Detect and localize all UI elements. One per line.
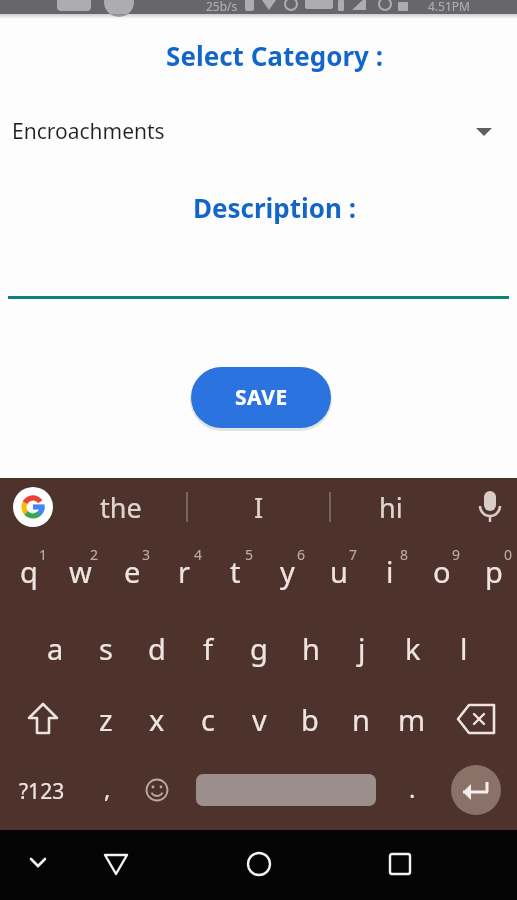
button[interactable]: s [46, 628, 166, 668]
staticText: x [149, 700, 165, 739]
button[interactable] [196, 774, 376, 806]
staticText: m [398, 700, 426, 739]
staticText: k [405, 629, 421, 668]
button[interactable] [451, 765, 501, 815]
staticText: a [47, 629, 64, 668]
button[interactable]: the [61, 487, 181, 527]
button[interactable]: c [148, 699, 268, 739]
staticText: y [280, 552, 295, 591]
button[interactable] [8, 240, 509, 299]
staticText: I [254, 489, 264, 526]
staticText: z [99, 700, 113, 739]
staticText: SAVE [235, 383, 288, 412]
button[interactable]: z [46, 699, 166, 739]
button[interactable]: I [199, 487, 319, 527]
button[interactable] [235, 840, 283, 888]
staticText: n [352, 700, 370, 739]
staticText: u [330, 552, 348, 591]
staticText: 25b/s [206, 0, 238, 12]
button[interactable] [13, 487, 53, 527]
button[interactable]: l [404, 628, 517, 668]
button[interactable]: hi [331, 487, 451, 527]
staticText: Encroachments [12, 117, 165, 146]
button[interactable] [92, 840, 140, 888]
staticText: v [252, 700, 267, 739]
staticText: d [148, 629, 166, 668]
staticText: 7 [349, 545, 358, 564]
button[interactable]: . [352, 768, 472, 808]
button[interactable]: o [382, 551, 502, 591]
button[interactable]: h [251, 628, 371, 668]
button[interactable]: w [20, 551, 140, 591]
button[interactable]: b [250, 699, 370, 739]
button[interactable]: r [124, 551, 244, 591]
staticText: ?123 [19, 777, 65, 806]
staticText: Select Category : [16, 38, 517, 73]
button[interactable]: i [330, 551, 450, 591]
staticText: . [409, 772, 416, 805]
staticText: p [485, 552, 503, 591]
staticText: j [358, 629, 366, 668]
staticText: 1 [39, 545, 48, 564]
button[interactable]: k [353, 628, 473, 668]
staticText: 2 [90, 545, 99, 564]
staticText: r [178, 552, 190, 591]
staticText: l [460, 629, 468, 668]
button[interactable] [376, 840, 424, 888]
staticText: o [433, 552, 451, 591]
staticText: 5 [245, 545, 254, 564]
button[interactable]: ?123 [0, 771, 102, 811]
staticText: 9 [452, 545, 461, 564]
button[interactable]: j [302, 628, 422, 668]
button[interactable]: x [97, 699, 217, 739]
staticText: , [104, 772, 111, 805]
staticText: Description : [16, 190, 517, 225]
button[interactable]: , [47, 768, 167, 808]
staticText: g [250, 629, 268, 668]
button[interactable]: f [148, 628, 268, 668]
button[interactable]: p [434, 551, 517, 591]
button[interactable]: g [199, 628, 319, 668]
button[interactable]: y [227, 551, 347, 591]
button[interactable]: n [301, 699, 421, 739]
staticText: h [302, 629, 320, 668]
button[interactable]: Encroachments [0, 110, 517, 154]
staticText: e [124, 552, 141, 591]
button[interactable]: m [352, 699, 472, 739]
button[interactable]: SAVE [191, 367, 331, 428]
staticText: b [301, 700, 319, 739]
staticText: 6 [297, 545, 306, 564]
button[interactable]: v [199, 699, 319, 739]
staticText: w [69, 552, 92, 591]
button[interactable]: t [175, 551, 295, 591]
staticText: t [230, 552, 241, 591]
button[interactable] [136, 769, 180, 813]
button[interactable]: q [0, 551, 89, 591]
staticText: the [100, 489, 142, 526]
staticText: f [203, 629, 213, 668]
button[interactable]: d [97, 628, 217, 668]
button[interactable] [18, 697, 68, 741]
staticText: 4 [194, 545, 203, 564]
staticText: 4.51PM [428, 0, 470, 12]
button[interactable]: e [72, 551, 192, 591]
staticText: c [201, 700, 215, 739]
staticText: i [386, 552, 394, 591]
staticText: q [20, 552, 38, 591]
staticText: hi [379, 489, 403, 526]
staticText: s [99, 629, 113, 668]
staticText: 8 [400, 545, 409, 564]
button[interactable]: a [0, 628, 115, 668]
staticText: 3 [142, 545, 151, 564]
button[interactable] [452, 697, 502, 741]
staticText: 0 [504, 545, 513, 564]
button[interactable]: u [279, 551, 399, 591]
